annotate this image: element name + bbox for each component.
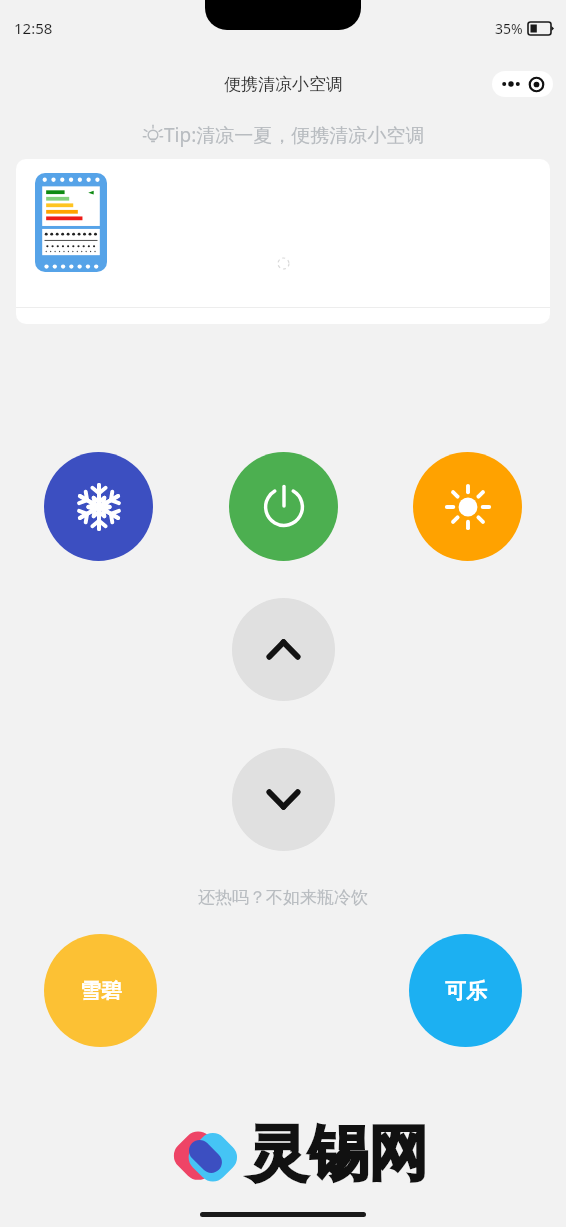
staticText: 灵锡网 [248,1116,428,1192]
button[interactable]: Warm mode [413,452,522,561]
button[interactable]: Cool mode [44,452,153,561]
staticText: 12:58 [14,18,53,38]
button[interactable] [16,159,550,324]
staticText: 雪碧 [80,978,122,1004]
button[interactable]: Increase [232,598,335,701]
button[interactable]: Power [229,452,338,561]
button[interactable]: Menu and close [492,71,553,97]
staticText: 可乐 [445,978,487,1004]
staticText: Tip:清凉一夏，便携清凉小空调 [164,122,425,148]
button[interactable]: Decrease [232,748,335,851]
staticText: 便携清凉小空调 [224,74,343,95]
staticText: 还热吗？不如来瓶冷饮 [198,887,368,908]
button[interactable]: 雪碧 [44,934,157,1047]
button[interactable]: 可乐 [409,934,522,1047]
staticText: 35% [495,19,523,38]
